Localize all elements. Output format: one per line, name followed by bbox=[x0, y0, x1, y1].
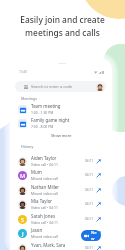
staticText: Search or enter a code bbox=[31, 84, 73, 89]
staticText: Easily join and create meetings and call… bbox=[0, 14, 125, 39]
staticText: 1:00 - 1:30 PM bbox=[31, 110, 54, 115]
other: Call back bbox=[96, 159, 101, 164]
staticText: Video call • 04:11 bbox=[31, 220, 58, 225]
staticText: Missed video call bbox=[31, 234, 58, 239]
button[interactable]: Search or enter a code bbox=[15, 81, 106, 92]
button[interactable]: Nathan Miller bbox=[10, 183, 112, 197]
button[interactable]: Aiden Taylor bbox=[10, 154, 112, 168]
staticText: Missed video call bbox=[31, 191, 58, 196]
other: Call back bbox=[96, 202, 101, 207]
staticText: Mum bbox=[31, 169, 42, 175]
staticText: Nathan Miller bbox=[31, 184, 60, 190]
staticText: Video call • 04:11 bbox=[31, 162, 58, 167]
button[interactable]: J bbox=[10, 226, 112, 240]
staticText: Jason bbox=[31, 227, 43, 233]
button[interactable]: M bbox=[10, 168, 112, 182]
button[interactable]: Yvan, Mark, Sara bbox=[10, 241, 112, 250]
staticText: 10:40 bbox=[19, 70, 28, 74]
button[interactable]: Family game night bbox=[10, 116, 112, 130]
staticText: 04:11 bbox=[85, 202, 94, 206]
button[interactable]: Show more bbox=[47, 131, 76, 140]
staticText: Mia Taylor bbox=[31, 198, 53, 204]
staticText: 7:00 - 8:00 PM bbox=[31, 124, 54, 129]
staticText: 04:11 bbox=[85, 159, 94, 163]
staticText: S bbox=[21, 216, 25, 224]
staticText: New bbox=[91, 230, 98, 241]
button[interactable]: Mia Taylor bbox=[10, 197, 112, 211]
staticText: History bbox=[21, 144, 34, 149]
staticText: Sarah Jones bbox=[31, 213, 56, 219]
other: Call back bbox=[96, 231, 101, 236]
staticText: 04:11 bbox=[85, 246, 94, 250]
staticText: 04:11 bbox=[85, 231, 94, 235]
staticText: 04:11 bbox=[85, 188, 94, 192]
button[interactable]: New bbox=[81, 230, 101, 241]
other: Call back bbox=[96, 188, 101, 193]
staticText: Show more bbox=[51, 133, 72, 138]
staticText: 04:11 bbox=[85, 217, 94, 221]
staticText: Missed video call bbox=[31, 176, 58, 181]
other: Call back bbox=[96, 173, 101, 178]
staticText: J bbox=[22, 230, 24, 238]
staticText: Meetings bbox=[21, 96, 37, 101]
staticText: M bbox=[20, 172, 26, 180]
staticText: Video call • 04:11 bbox=[31, 205, 58, 210]
staticText: Yvan, Mark, Sara bbox=[31, 242, 66, 248]
other: Call back bbox=[96, 246, 101, 250]
button[interactable]: S bbox=[10, 212, 112, 226]
staticText: Team meeting bbox=[31, 103, 61, 109]
other: Call back bbox=[96, 217, 101, 222]
button[interactable]: Team meeting bbox=[10, 102, 112, 116]
staticText: Aiden Taylor bbox=[31, 155, 57, 161]
staticText: 04:11 bbox=[85, 173, 94, 177]
staticText: Family game night bbox=[31, 117, 70, 123]
